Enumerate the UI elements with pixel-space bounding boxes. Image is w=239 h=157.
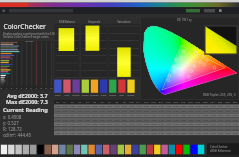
button[interactable] — [0, 0, 239, 157]
